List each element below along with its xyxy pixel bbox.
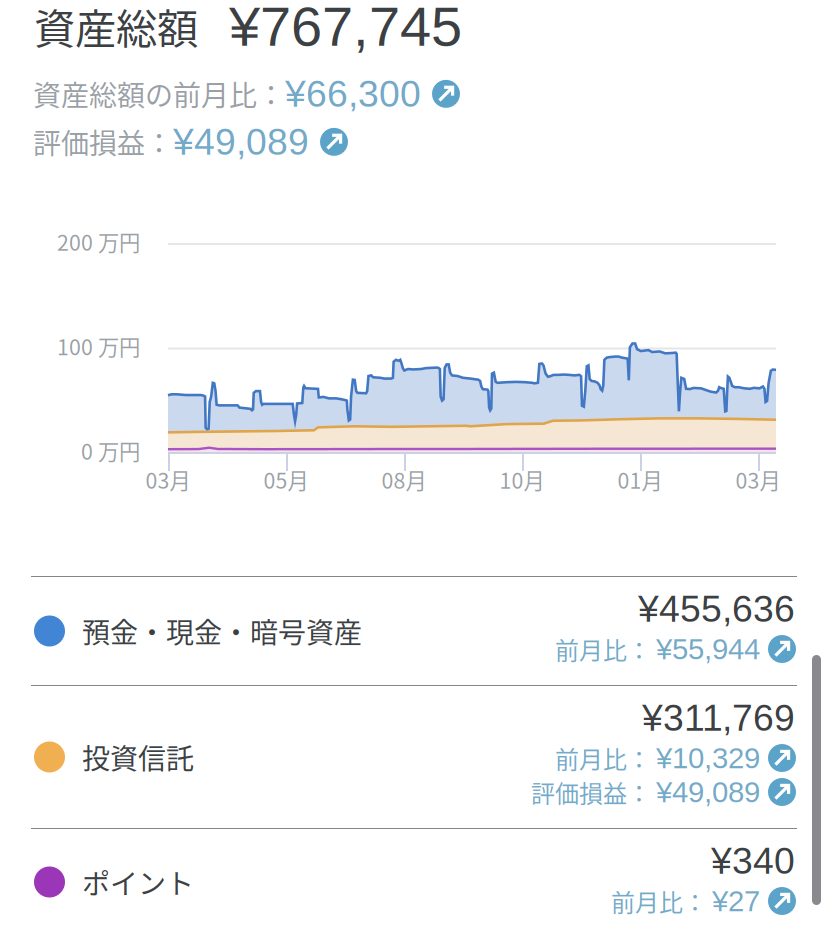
- staticText: 0 万円: [81, 435, 140, 466]
- button[interactable]: 投資信託: [0, 686, 828, 828]
- staticText: 200 万円: [57, 226, 140, 257]
- staticText: 03月: [735, 464, 780, 495]
- staticText: ¥311,769: [642, 697, 795, 739]
- staticText: ¥455,636: [638, 588, 795, 630]
- staticText: ¥767,745: [229, 0, 462, 58]
- staticText: ¥340: [711, 840, 795, 882]
- staticText: 前月比：: [555, 741, 656, 775]
- staticText: 05月: [263, 464, 308, 495]
- staticText: 前月比：: [611, 884, 712, 918]
- staticText: ポイント: [82, 862, 194, 902]
- staticText: 03月: [145, 464, 190, 495]
- staticText: ¥27: [712, 885, 760, 917]
- staticText: ¥55,944: [656, 633, 760, 665]
- staticText: 100 万円: [57, 330, 140, 361]
- staticText: ¥49,089: [656, 776, 760, 808]
- staticText: 預金・現金・暗号資産: [82, 611, 362, 651]
- staticText: 資産総額: [34, 0, 198, 56]
- staticText: 評価損益：: [33, 122, 173, 162]
- button[interactable]: 預金・現金・暗号資産: [0, 577, 828, 685]
- staticText: 01月: [617, 464, 662, 495]
- staticText: ¥66,300: [285, 73, 421, 115]
- staticText: 資産総額の前月比：: [33, 74, 285, 114]
- staticText: 評価損益：: [531, 775, 656, 809]
- staticText: ¥49,089: [173, 121, 309, 163]
- staticText: 投資信託: [82, 737, 194, 777]
- button[interactable]: ポイント: [0, 829, 828, 935]
- staticText: 前月比：: [555, 632, 656, 666]
- staticText: ¥10,329: [656, 742, 760, 774]
- staticText: 10月: [499, 464, 544, 495]
- staticText: 08月: [381, 464, 426, 495]
